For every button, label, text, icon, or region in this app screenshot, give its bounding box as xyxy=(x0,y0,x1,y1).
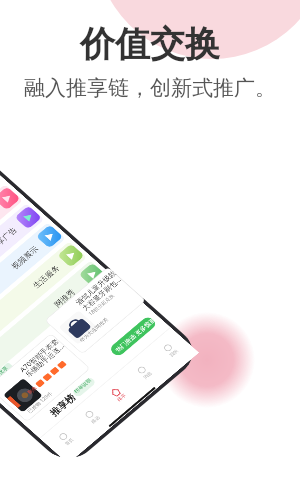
staticText: 价值交换 xyxy=(80,22,220,66)
button[interactable]: App preview xyxy=(0,0,300,500)
staticText: 融入推享链，创新式推广。 xyxy=(24,75,276,101)
